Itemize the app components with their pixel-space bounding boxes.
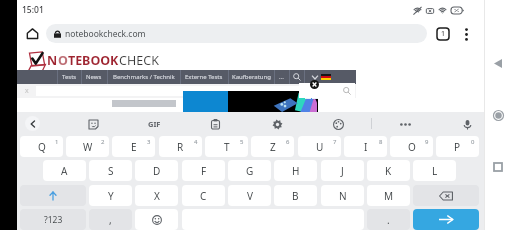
button[interactable]: Themes — [328, 112, 348, 136]
button[interactable]: Z — [251, 136, 294, 157]
staticText: X — [25, 87, 29, 95]
button[interactable]: Shift — [20, 185, 86, 206]
staticText: TEBOOK — [68, 52, 119, 69]
staticText: Q — [38, 140, 46, 154]
staticText: O — [408, 140, 416, 154]
button[interactable]: Backspace — [413, 185, 479, 206]
staticText: P — [454, 140, 461, 154]
staticText: W — [83, 140, 93, 154]
button[interactable]: More — [395, 112, 415, 136]
button[interactable]: S — [89, 160, 132, 181]
button[interactable]: K — [367, 160, 410, 181]
staticText: N — [47, 52, 58, 69]
staticText: 0 — [471, 138, 475, 146]
staticText: B — [292, 189, 299, 203]
button[interactable]: E — [112, 136, 155, 157]
staticText: C — [200, 189, 207, 203]
button[interactable]: Enter — [413, 209, 479, 230]
button[interactable]: P — [436, 136, 479, 157]
button[interactable]: Language — [304, 70, 338, 84]
button[interactable]: Kaufberatung — [228, 70, 274, 84]
button[interactable]: Tests — [57, 70, 81, 84]
button[interactable]: GIF — [144, 112, 164, 136]
staticText: E — [131, 140, 137, 154]
button[interactable]: Close ad — [310, 80, 319, 89]
staticText: notebookcheck.com — [65, 28, 146, 40]
button[interactable]: More options — [456, 24, 476, 44]
button[interactable]: Tabs — [433, 24, 453, 44]
staticText: I — [364, 140, 368, 154]
button[interactable]: X — [135, 185, 178, 206]
button[interactable]: Recent apps — [488, 157, 508, 177]
staticText: X — [154, 189, 160, 203]
button[interactable]: Home — [488, 105, 508, 125]
button[interactable]: D — [135, 160, 178, 181]
button[interactable]: U — [298, 136, 341, 157]
button[interactable]: . — [367, 209, 410, 230]
button[interactable]: M — [367, 185, 410, 206]
button[interactable]: H — [274, 160, 317, 181]
button[interactable]: I — [344, 136, 387, 157]
button[interactable]: Close advertisement — [312, 92, 318, 99]
button[interactable]: Back — [488, 53, 508, 73]
button[interactable]: Emoji — [135, 209, 178, 230]
staticText: , — [109, 213, 112, 227]
staticText: 5 — [240, 138, 244, 146]
staticText: 15:01 — [22, 4, 44, 16]
staticText: 1 — [55, 138, 59, 146]
button[interactable]: Voice input — [457, 112, 477, 136]
button[interactable]: , — [89, 209, 132, 230]
staticText: 1 — [441, 29, 446, 39]
staticText: ... — [279, 73, 284, 81]
button[interactable]: A — [43, 160, 86, 181]
button[interactable]: Search — [289, 70, 304, 84]
staticText: A — [61, 164, 68, 178]
staticText: Z — [270, 140, 276, 154]
button[interactable]: J — [321, 160, 364, 181]
button[interactable]: Settings — [267, 112, 287, 136]
button[interactable]: C — [182, 185, 225, 206]
button[interactable]: Clipboard — [205, 112, 225, 136]
button[interactable]: Ad info — [305, 92, 311, 99]
staticText: T — [224, 140, 230, 154]
staticText: Kaufberatung — [232, 73, 271, 81]
staticText: 6 — [286, 138, 290, 146]
button[interactable]: R — [159, 136, 202, 157]
button[interactable]: L — [413, 160, 456, 181]
staticText: GIF — [148, 119, 161, 129]
staticText: Y — [108, 189, 114, 203]
button[interactable]: O — [390, 136, 433, 157]
staticText: . — [387, 213, 390, 227]
button[interactable]: W — [66, 136, 109, 157]
staticText: ?123 — [44, 214, 63, 226]
button[interactable]: Home — [22, 23, 43, 44]
button[interactable] — [36, 86, 352, 96]
button[interactable]: ... — [274, 70, 289, 84]
button[interactable]: B — [274, 185, 317, 206]
staticText: J — [341, 164, 344, 178]
button[interactable]: Q — [20, 136, 63, 157]
button[interactable]: Y — [89, 185, 132, 206]
staticText: R — [177, 140, 184, 154]
staticText: 4 — [194, 138, 198, 146]
button[interactable] — [299, 83, 355, 98]
button[interactable]: notebookcheck.com — [46, 24, 427, 43]
button[interactable]: V — [228, 185, 271, 206]
staticText: 8 — [379, 138, 383, 146]
staticText: G — [246, 164, 254, 178]
button[interactable]: Stickers — [83, 112, 103, 136]
button[interactable]: ?123 — [20, 209, 86, 230]
button[interactable]: Benchmarks / Technik — [107, 70, 181, 84]
staticText: 9 — [425, 138, 429, 146]
button[interactable]: G — [228, 160, 271, 181]
button[interactable]: F — [182, 160, 225, 181]
staticText: D — [153, 164, 161, 178]
button[interactable]: N — [321, 185, 364, 206]
button[interactable]: T — [205, 136, 248, 157]
button[interactable]: News — [81, 70, 106, 84]
button[interactable]: Externe Tests — [180, 70, 228, 84]
staticText: S — [108, 164, 114, 178]
staticText: CHECK — [119, 52, 160, 69]
button[interactable]: Back — [25, 116, 40, 131]
